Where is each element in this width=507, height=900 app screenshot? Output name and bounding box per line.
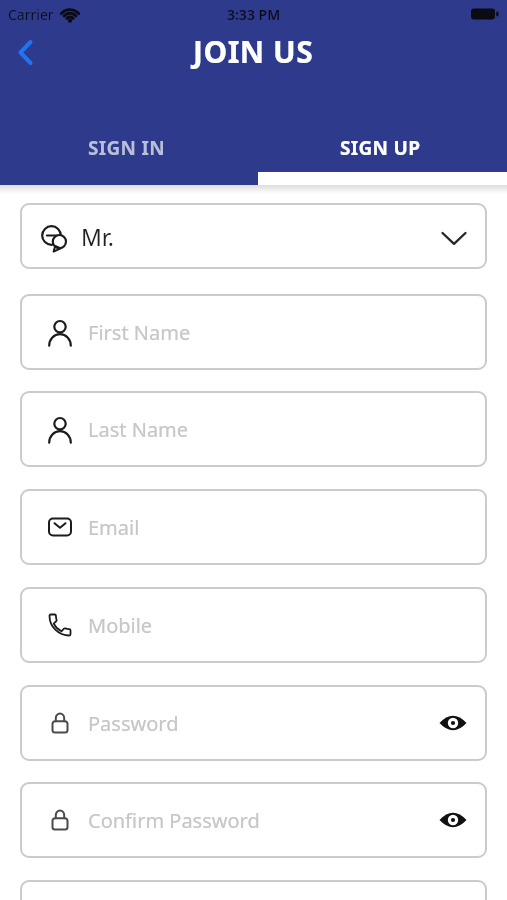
staticText: Carrier [8, 5, 54, 24]
button[interactable]: Confirm Password [20, 782, 487, 858]
staticText: Last Name [88, 416, 189, 443]
staticText: SIGN IN [88, 135, 165, 161]
staticText: First Name [88, 319, 191, 346]
button[interactable]: SIGN UP [253, 124, 507, 172]
button[interactable]: First Name [20, 294, 487, 370]
button[interactable]: Mobile [20, 587, 487, 663]
staticText: Confirm Password [88, 807, 260, 834]
staticText: SIGN UP [340, 135, 421, 161]
button[interactable]: Password [20, 685, 487, 761]
button[interactable]: Mr. [20, 203, 487, 269]
staticText: Password [88, 710, 179, 737]
button[interactable] [10, 35, 40, 69]
staticText: JOIN US [193, 31, 314, 72]
button[interactable]: Email [20, 489, 487, 565]
button[interactable]: SIGN IN [0, 124, 253, 172]
staticText: 3:33 PM [227, 5, 281, 24]
staticText: Mobile [88, 612, 153, 639]
staticText: Mr. [81, 221, 114, 252]
button[interactable] [20, 880, 487, 900]
button[interactable]: Last Name [20, 391, 487, 467]
staticText: Email [88, 514, 140, 541]
